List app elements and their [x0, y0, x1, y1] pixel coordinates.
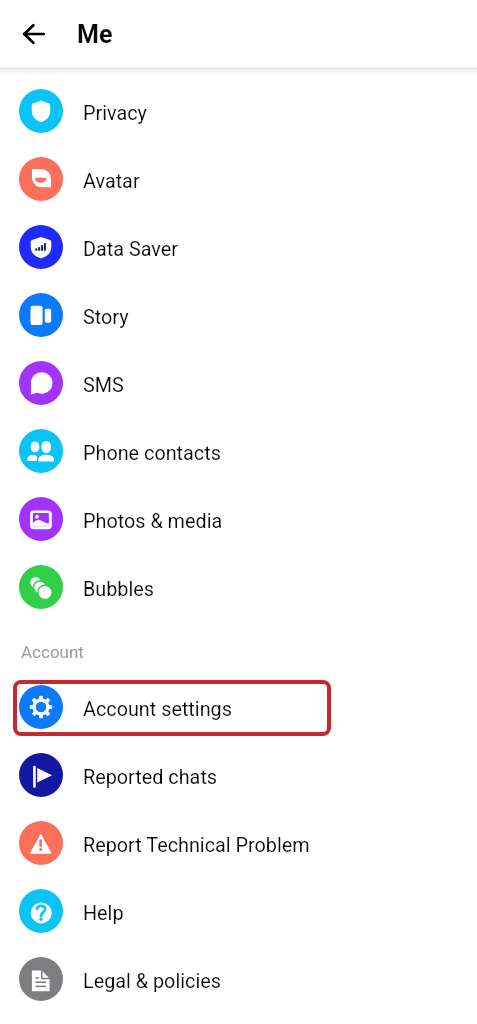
staticText: SMS — [83, 374, 124, 397]
button[interactable]: Data Saver — [0, 213, 477, 281]
staticText: Story — [83, 306, 129, 329]
button[interactable]: Privacy — [0, 77, 477, 145]
button[interactable]: Bubbles — [0, 553, 477, 621]
staticText: Photos & media — [83, 510, 223, 533]
button[interactable]: Phone contacts — [0, 417, 477, 485]
button[interactable]: Help — [0, 877, 477, 945]
staticText: Account — [21, 642, 84, 662]
button[interactable]: Reported chats — [0, 741, 477, 809]
staticText: Avatar — [83, 170, 140, 193]
staticText: Help — [83, 902, 124, 925]
button[interactable]: Report Technical Problem — [0, 809, 477, 877]
staticText: Data Saver — [83, 238, 178, 261]
button[interactable]: Story — [0, 281, 477, 349]
staticText: Me — [77, 20, 113, 49]
button[interactable]: Back — [10, 10, 58, 58]
staticText: Phone contacts — [83, 442, 221, 465]
staticText: Privacy — [83, 102, 147, 125]
button[interactable]: Account settings — [0, 673, 477, 741]
button[interactable]: SMS — [0, 349, 477, 417]
staticText: Bubbles — [83, 578, 155, 601]
staticText: Legal & policies — [83, 970, 221, 993]
staticText: Report Technical Problem — [83, 834, 310, 857]
staticText: Account settings — [83, 698, 232, 721]
button[interactable]: Photos & media — [0, 485, 477, 553]
button[interactable]: Avatar — [0, 145, 477, 213]
staticText: Reported chats — [83, 766, 218, 789]
button[interactable]: Legal & policies — [0, 945, 477, 1013]
